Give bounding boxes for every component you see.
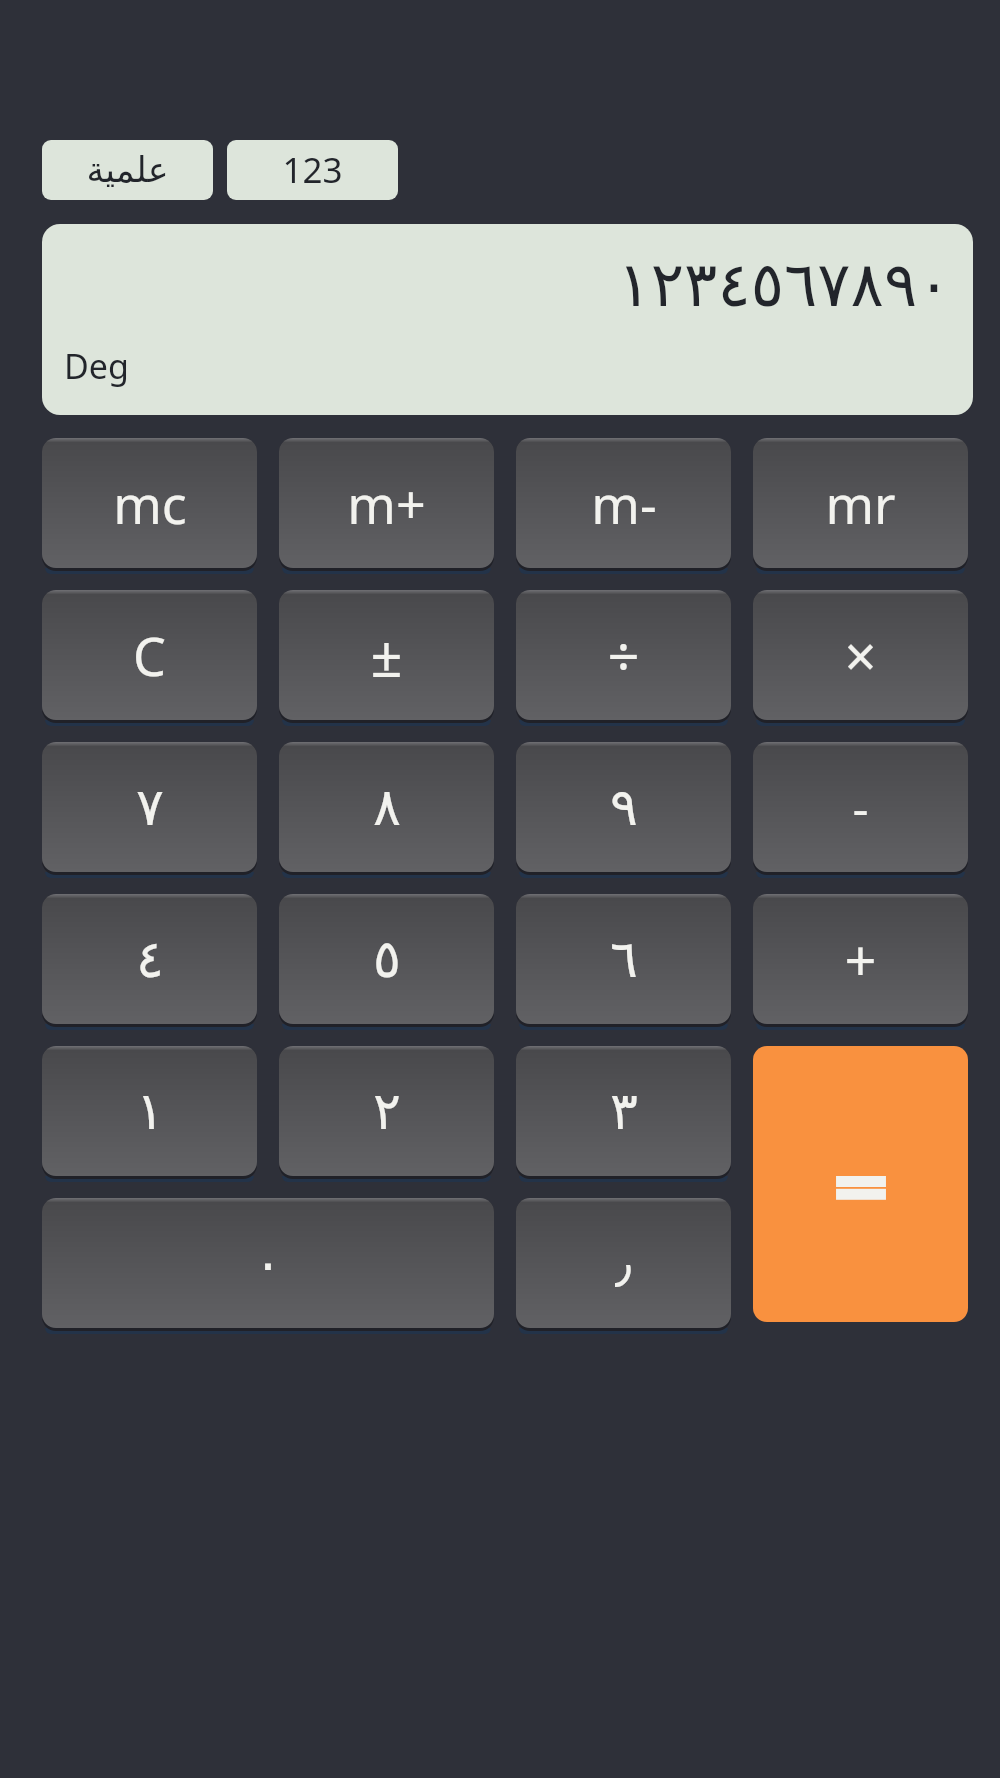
staticText: ٢ — [373, 1081, 401, 1142]
staticText: ÷ — [607, 617, 640, 693]
staticText: ٥ — [373, 929, 401, 990]
button[interactable]: ٣ — [516, 1046, 731, 1176]
staticText: m+ — [347, 468, 426, 539]
button[interactable]: ٥ — [279, 894, 494, 1024]
button[interactable]: 123 — [227, 140, 398, 200]
staticText: ٠ — [254, 1233, 282, 1294]
staticText: Deg — [64, 343, 129, 389]
button[interactable]: - — [753, 742, 968, 872]
staticText: 123 — [282, 146, 343, 194]
staticText: ٨ — [373, 777, 401, 838]
staticText: علمية — [86, 150, 169, 191]
button[interactable]: ٧ — [42, 742, 257, 872]
staticText: ٫ — [615, 1233, 632, 1294]
button[interactable]: Equals — [753, 1046, 968, 1322]
staticText: ٣ — [610, 1081, 638, 1142]
staticText: ٤ — [136, 929, 164, 990]
staticText: ٦ — [610, 929, 638, 990]
staticText: ٧ — [136, 777, 164, 838]
button[interactable]: ٩ — [516, 742, 731, 872]
button[interactable]: m- — [516, 438, 731, 568]
button[interactable]: × — [753, 590, 968, 720]
button[interactable]: ± — [279, 590, 494, 720]
staticText: m- — [591, 468, 657, 539]
button[interactable]: mr — [753, 438, 968, 568]
button[interactable]: + — [753, 894, 968, 1024]
staticText: ١٢٣٤٥٦٧٨٩٠ — [617, 248, 951, 320]
button[interactable]: ٢ — [279, 1046, 494, 1176]
button[interactable]: ١ — [42, 1046, 257, 1176]
staticText: C — [133, 620, 166, 691]
staticText: + — [844, 921, 877, 997]
button[interactable]: علمية — [42, 140, 213, 200]
button[interactable]: C — [42, 590, 257, 720]
staticText: mr — [825, 468, 896, 539]
button[interactable]: ١٢٣٤٥٦٧٨٩٠ — [42, 224, 973, 415]
staticText: ١ — [136, 1081, 164, 1142]
button[interactable]: ÷ — [516, 590, 731, 720]
button[interactable]: ٤ — [42, 894, 257, 1024]
button[interactable]: ٨ — [279, 742, 494, 872]
staticText: mc — [113, 468, 187, 539]
staticText: ٩ — [610, 777, 638, 838]
button[interactable]: ٫ — [516, 1198, 731, 1328]
button[interactable]: ٠ — [42, 1198, 494, 1328]
staticText: - — [852, 773, 869, 841]
button[interactable]: m+ — [279, 438, 494, 568]
staticText: × — [844, 617, 877, 693]
staticText: ± — [370, 617, 403, 693]
button[interactable]: ٦ — [516, 894, 731, 1024]
button[interactable]: mc — [42, 438, 257, 568]
